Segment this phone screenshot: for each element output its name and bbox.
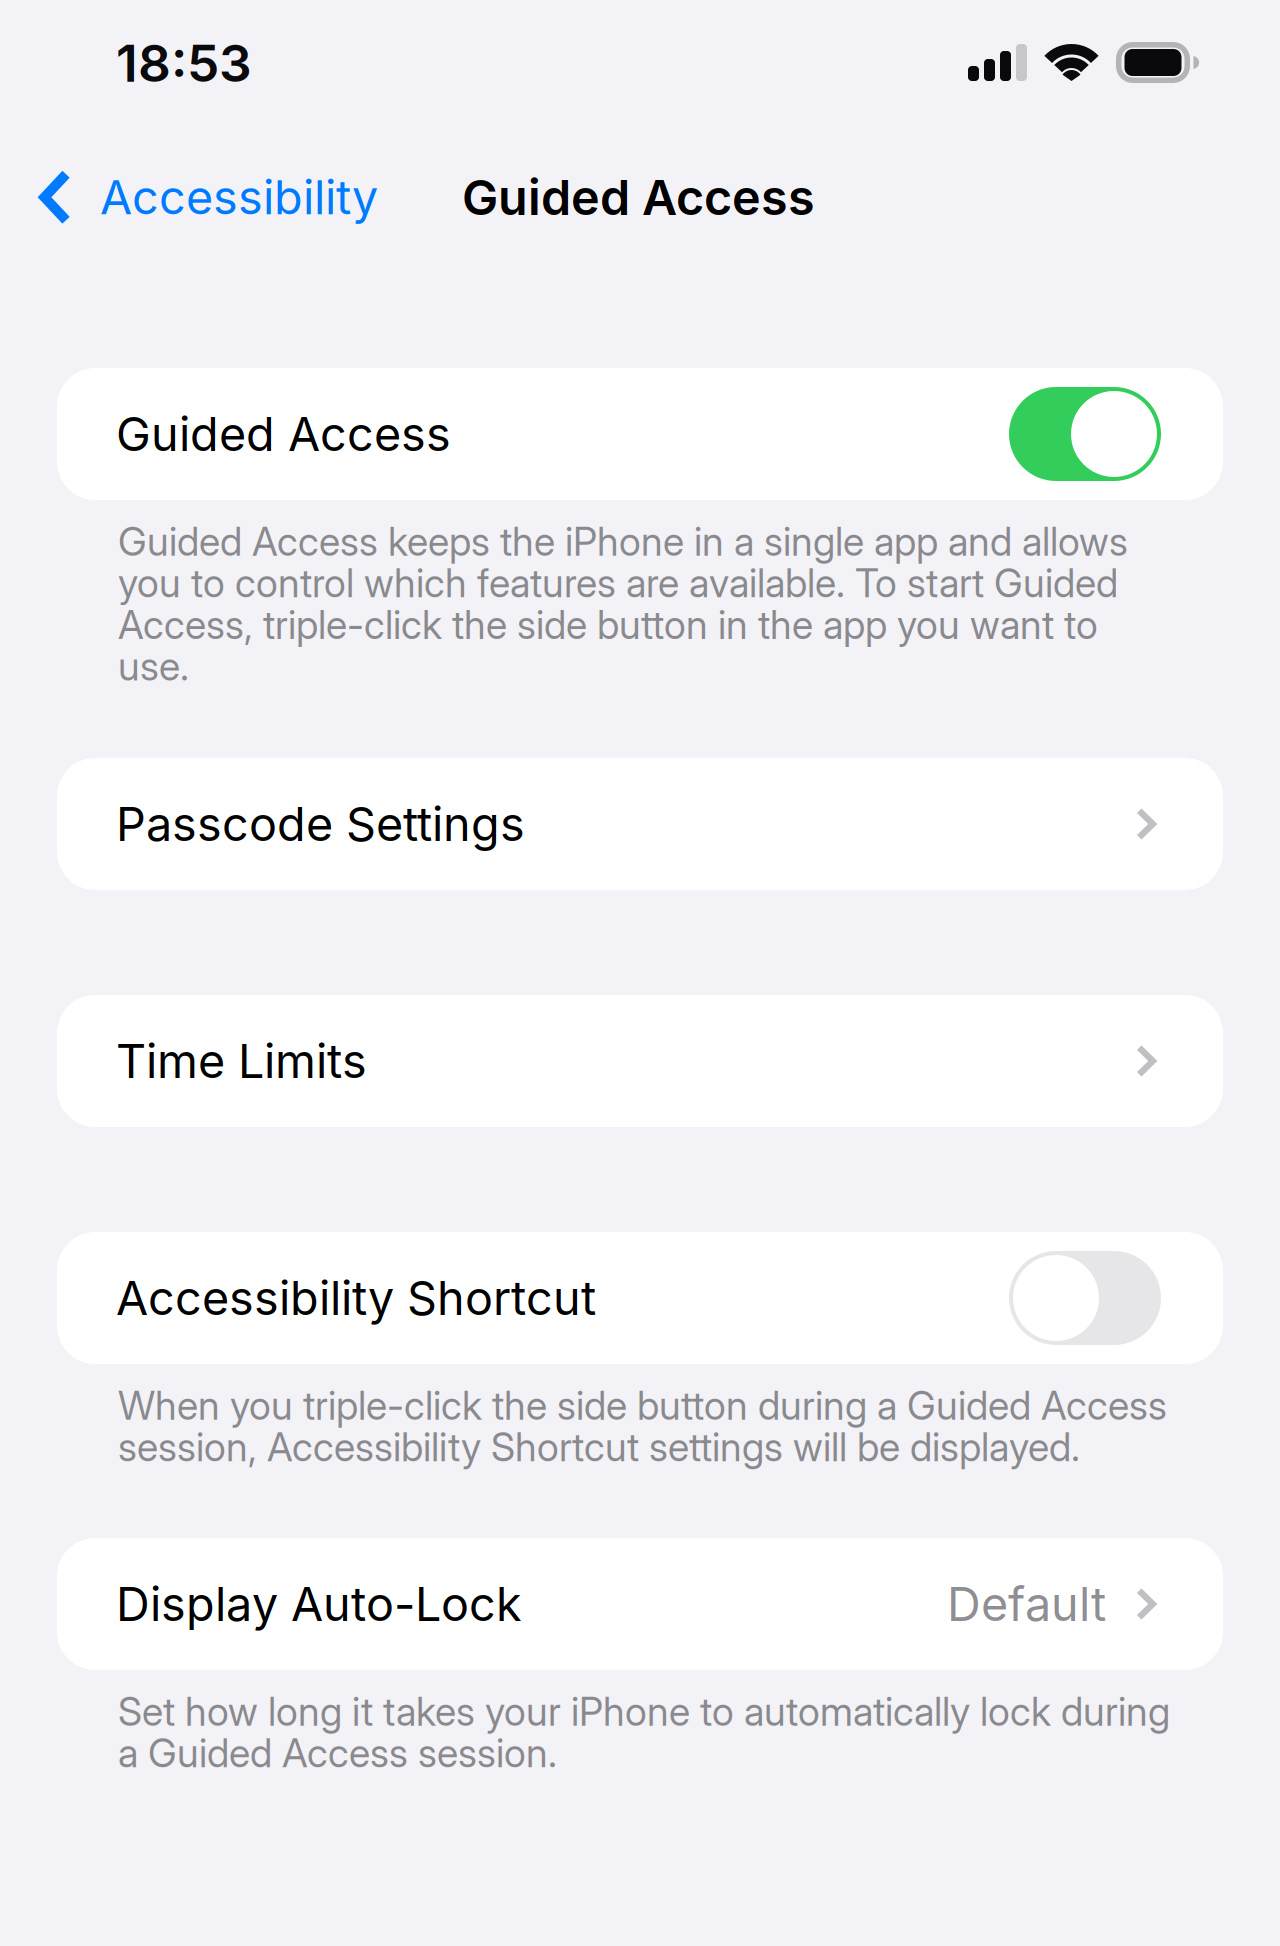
button[interactable]: Guided Access xyxy=(57,368,1223,500)
button[interactable]: Passcode Settings xyxy=(57,758,1223,890)
staticText: Passcode Settings xyxy=(116,796,525,852)
staticText: Time Limits xyxy=(116,1033,367,1089)
staticText: Accessibility Shortcut xyxy=(116,1270,596,1326)
button[interactable]: Accessibility xyxy=(26,157,390,237)
staticText: Guided Access xyxy=(116,406,451,462)
staticText: Set how long it takes your iPhone to aut… xyxy=(118,1688,1170,1777)
staticText: Accessibility xyxy=(100,169,378,225)
button[interactable]: Display Auto-Lock xyxy=(57,1538,1223,1670)
button[interactable]: Accessibility Shortcut xyxy=(57,1232,1223,1364)
staticText: 18:53 xyxy=(116,32,252,94)
staticText: Guided Access keeps the iPhone in a sing… xyxy=(118,518,1128,690)
button[interactable]: Time Limits xyxy=(57,995,1223,1127)
staticText: When you triple-click the side button du… xyxy=(118,1382,1167,1471)
staticText: Guided Access xyxy=(462,168,815,227)
staticText: Default xyxy=(947,1576,1106,1632)
staticText: Display Auto-Lock xyxy=(116,1576,522,1632)
